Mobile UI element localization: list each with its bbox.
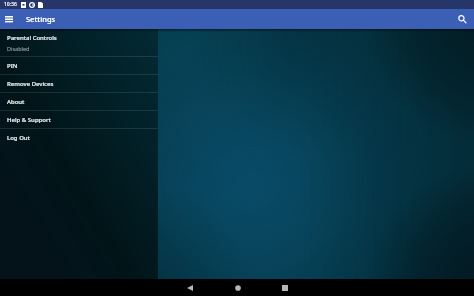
button[interactable]: Back — [182, 280, 198, 296]
staticText: PIN — [7, 62, 18, 70]
button[interactable]: Parental Controls — [0, 29, 158, 57]
button[interactable]: Recent apps — [277, 280, 293, 296]
button[interactable]: Remove Devices — [0, 75, 158, 93]
staticText: Help & Support — [7, 116, 51, 124]
staticText: Remove Devices — [7, 80, 54, 88]
button[interactable]: PIN — [0, 57, 158, 75]
button[interactable]: Home — [230, 280, 246, 296]
staticText: Disabled — [7, 45, 30, 52]
button[interactable]: Help & Support — [0, 111, 158, 129]
button[interactable]: Open navigation menu — [0, 9, 18, 29]
staticText: Parental Controls — [7, 34, 57, 42]
staticText: About — [7, 98, 25, 106]
staticText: Settings — [26, 14, 56, 24]
button[interactable]: Search — [452, 9, 472, 29]
staticText: 10:36 — [4, 1, 17, 8]
staticText: Log Out — [7, 134, 30, 142]
button[interactable]: Log Out — [0, 129, 158, 147]
button[interactable]: About — [0, 93, 158, 111]
